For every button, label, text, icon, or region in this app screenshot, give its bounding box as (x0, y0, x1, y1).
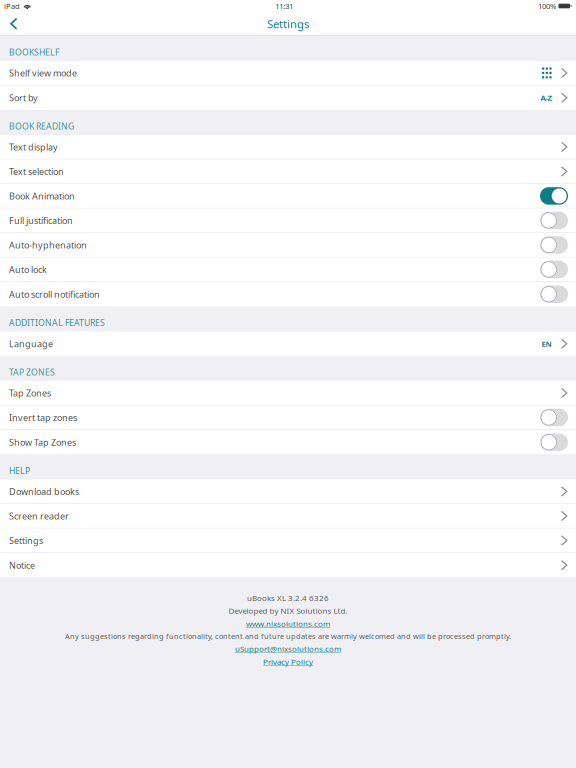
staticText: BOOK READING (9, 120, 74, 132)
button[interactable]: Text selection (0, 159, 576, 184)
staticText: Language (9, 338, 53, 350)
staticText: Settings (9, 534, 43, 547)
staticText: Screen reader (9, 510, 69, 522)
staticText: Full justification (9, 214, 73, 227)
button[interactable]: uSupport@nixsolutions.com (235, 643, 341, 654)
button[interactable]: Sort by (0, 85, 576, 110)
staticText: Privacy Policy (263, 656, 313, 667)
button[interactable]: www.nixsolutions.com (246, 618, 330, 629)
staticText: BOOKSHELF (9, 46, 59, 58)
button[interactable]: Invert tap zones (0, 405, 576, 430)
staticText: 100% (538, 1, 556, 11)
staticText: HELP (9, 465, 30, 476)
staticText: uSupport@nixsolutions.com (235, 643, 341, 654)
button[interactable]: Settings (0, 528, 576, 553)
staticText: Auto-hyphenation (9, 239, 87, 251)
button[interactable]: Show Tap Zones (0, 430, 576, 454)
button[interactable]: Screen reader (0, 504, 576, 528)
button[interactable]: Auto-hyphenation (0, 233, 576, 257)
staticText: Text display (9, 141, 58, 153)
staticText: www.nixsolutions.com (246, 618, 330, 629)
staticText: Sort by (9, 92, 38, 104)
staticText: Book Animation (9, 190, 75, 202)
staticText: iPad (4, 1, 20, 11)
staticText: Tap Zones (9, 387, 51, 399)
button[interactable]: Auto lock (0, 257, 576, 282)
button[interactable]: Book Animation (0, 184, 576, 208)
staticText: Download books (9, 485, 79, 498)
staticText: TAP ZONES (9, 366, 55, 378)
staticText: Notice (9, 559, 35, 571)
button[interactable]: Full justification (0, 208, 576, 233)
staticText: EN (542, 338, 552, 349)
button[interactable]: Back (0, 13, 30, 35)
button[interactable]: Notice (0, 553, 576, 577)
staticText: Any suggestions regarding functionality,… (65, 631, 511, 641)
staticText: 11:31 (275, 1, 293, 11)
staticText: Settings (267, 16, 309, 31)
staticText: uBooks XL 3.2.4 6326 (247, 592, 329, 603)
button[interactable]: Shelf view mode (0, 61, 576, 85)
staticText: Developed by NIX Solutions Ltd. (228, 605, 347, 616)
button[interactable]: Download books (0, 479, 576, 504)
staticText: Text selection (9, 165, 64, 178)
button[interactable]: Language (0, 331, 576, 356)
staticText: Show Tap Zones (9, 436, 76, 448)
staticText: ADDITIONAL FEATURES (9, 317, 105, 328)
button[interactable]: Text display (0, 135, 576, 159)
staticText: Auto scroll notification (9, 288, 100, 300)
button[interactable]: Tap Zones (0, 381, 576, 405)
staticText: A-Z (541, 92, 552, 103)
staticText: Auto lock (9, 263, 47, 276)
button[interactable]: Privacy Policy (263, 656, 313, 667)
staticText: Invert tap zones (9, 411, 77, 424)
button[interactable]: Auto scroll notification (0, 282, 576, 306)
staticText: Shelf view mode (9, 67, 77, 79)
